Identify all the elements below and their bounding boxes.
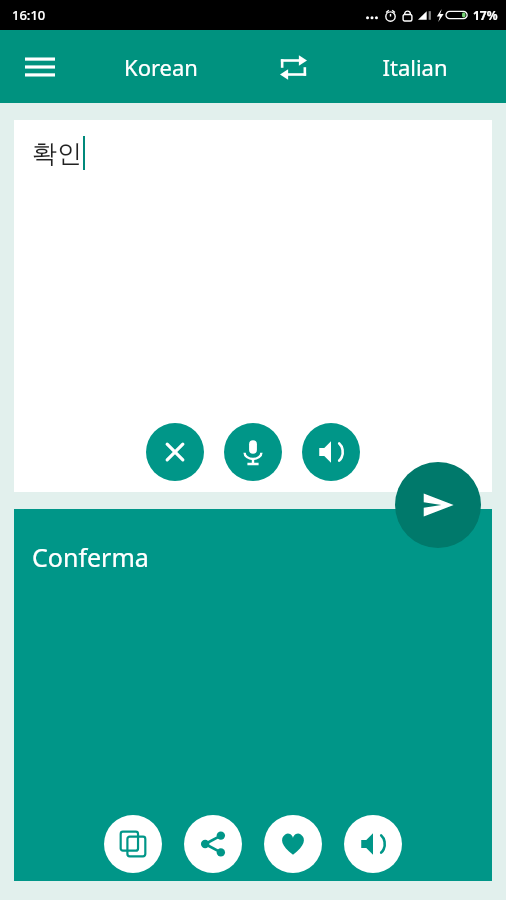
button[interactable]: Share xyxy=(184,815,242,873)
staticText: Conferma xyxy=(32,540,149,574)
staticText: 17% xyxy=(473,7,498,23)
button[interactable]: Clear xyxy=(146,423,204,481)
button[interactable]: Favorite xyxy=(264,815,322,873)
button[interactable]: Speak xyxy=(224,423,282,481)
button[interactable]: Menu xyxy=(14,41,66,93)
staticText: Korean xyxy=(124,52,198,82)
button[interactable]: Swap languages xyxy=(267,41,319,93)
staticText: 확인 xyxy=(32,138,82,169)
staticText: 16:10 xyxy=(12,6,46,24)
button[interactable]: Italian xyxy=(340,39,490,95)
button[interactable]: Translate xyxy=(395,462,481,548)
button[interactable]: Copy xyxy=(104,815,162,873)
staticText: Italian xyxy=(382,52,448,82)
button[interactable]: Korean xyxy=(83,39,238,95)
button[interactable]: Listen xyxy=(302,423,360,481)
button[interactable]: Listen xyxy=(344,815,402,873)
